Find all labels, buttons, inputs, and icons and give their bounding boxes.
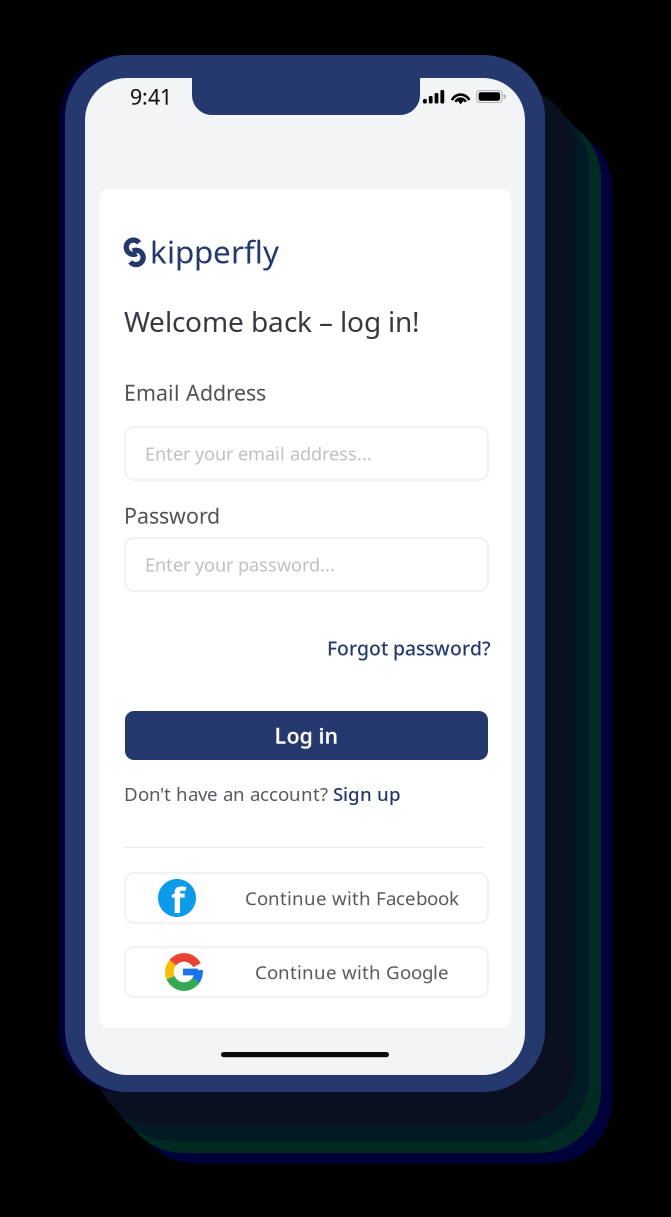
staticText: Continue with Facebook bbox=[245, 885, 459, 911]
button[interactable]: Enter your password... bbox=[125, 538, 488, 591]
button[interactable]: Forgot password? bbox=[128, 636, 491, 660]
staticText: Password bbox=[124, 501, 220, 530]
staticText: Don't have an account? bbox=[124, 781, 328, 806]
staticText: Log in bbox=[274, 721, 338, 750]
staticText: 9:41 bbox=[130, 82, 172, 111]
staticText: kipperfly bbox=[150, 230, 279, 273]
button[interactable]: Log in bbox=[125, 711, 488, 760]
button[interactable]: Continue with Google bbox=[125, 947, 488, 997]
button[interactable]: Continue with Facebook bbox=[125, 873, 488, 923]
staticText: Enter your password... bbox=[145, 552, 335, 577]
staticText: Continue with Google bbox=[255, 959, 449, 985]
button[interactable]: Sign up bbox=[333, 781, 401, 806]
button[interactable]: Enter your email address... bbox=[125, 427, 488, 480]
staticText: Email Address bbox=[124, 378, 266, 407]
staticText: Sign up bbox=[333, 781, 401, 806]
staticText: Welcome back – log in! bbox=[124, 302, 420, 340]
staticText: Forgot password? bbox=[327, 635, 491, 661]
staticText: f bbox=[171, 875, 185, 924]
staticText: Enter your email address... bbox=[145, 441, 372, 466]
